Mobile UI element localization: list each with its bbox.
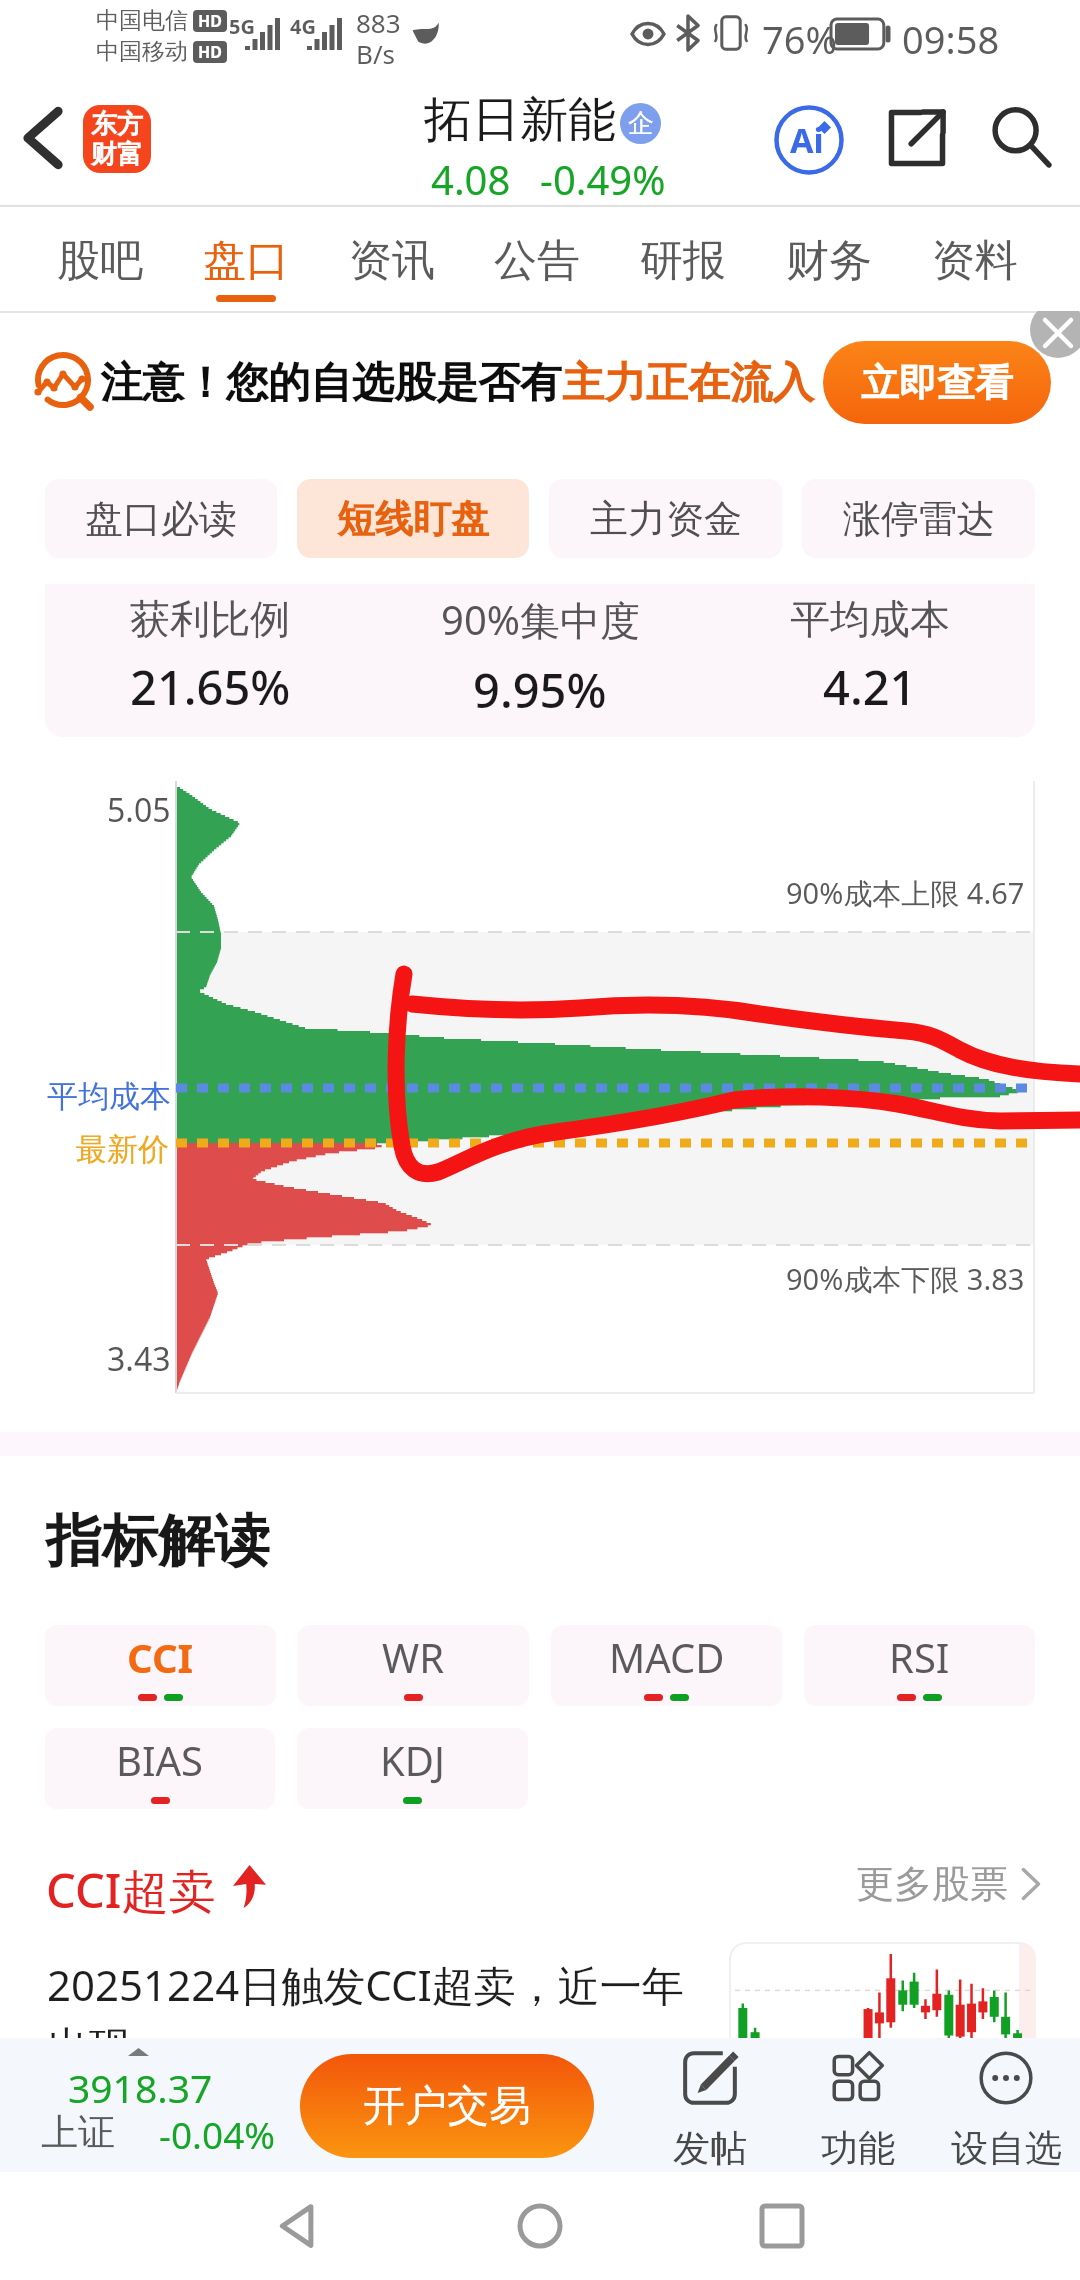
staticText: 中国移动 [96,37,188,66]
button[interactable]: Home [510,2196,570,2256]
button[interactable]: CCI [45,1625,276,1706]
staticText: 股吧 [57,234,143,288]
button[interactable]: 研报 [611,208,755,306]
staticText: MACD [609,1630,725,1684]
button[interactable]: AI assistant [774,105,844,175]
button[interactable]: 主力资金 [549,479,782,558]
staticText: 21.65% [130,655,291,719]
button[interactable]: Close banner [1030,311,1080,358]
button[interactable]: Back [268,2196,328,2256]
button[interactable]: 3918.37 [30,2060,280,2160]
staticText: 短线盯盘 [337,495,489,543]
staticText: 获利比例 [130,594,290,644]
staticText: 4G [290,13,316,40]
staticText: 拓日新能 [424,90,616,150]
button[interactable]: 股吧 [28,208,172,306]
staticText: 盘口必读 [85,495,237,543]
staticText: 5G [229,13,255,40]
staticText: BIAS [116,1733,204,1787]
button[interactable]: 更多股票 [856,1860,1042,1908]
staticText: HD [198,41,222,63]
staticText: 3918.37 [68,2061,213,2114]
staticText: B/s [356,36,396,71]
staticText: KDJ [380,1733,445,1787]
staticText: 盘口 [203,234,289,288]
staticText: 20251224日触发CCI超卖，近一年 [47,1956,684,2013]
staticText: 资料 [932,234,1018,288]
button[interactable]: 开户交易 [300,2054,594,2158]
staticText: 东方 财富 [91,108,143,171]
button[interactable]: KDJ [297,1728,528,1809]
staticText: 平均成本 [790,594,950,644]
button[interactable]: 功能 [783,2051,933,2172]
staticText: 研报 [640,234,726,288]
button[interactable]: 资讯 [320,208,464,306]
staticText: 90%成本上限 4.67 [786,873,1025,913]
button[interactable]: 发帖 [635,2051,785,2172]
button[interactable]: WR [298,1625,529,1706]
staticText: 指标解读 [46,1506,270,1577]
staticText: 中国电信 [96,6,188,35]
staticText: 90%成本下限 3.83 [786,1259,1025,1299]
staticText: -0.49% [540,152,666,206]
staticText: Ai [790,117,824,163]
staticText: 更多股票 [856,1860,1008,1908]
staticText: 企 [628,107,654,140]
staticText: 功能 [821,2125,895,2172]
staticText: 平均成本 [47,1077,171,1116]
staticText: 上证 [41,2109,115,2156]
button[interactable]: 设自选 [931,2051,1080,2172]
staticText: 注意！您的自选股是否有 [100,357,562,410]
button[interactable]: Back [10,98,76,178]
staticText: 涨停雷达 [843,495,995,543]
staticText: 4.08 [431,152,511,206]
staticText: CCI超卖 [46,1858,216,1922]
staticText: 财务 [786,234,872,288]
staticText: -0.04% [159,2109,276,2159]
staticText: CCI [127,1630,194,1684]
staticText: 立即查看 [861,359,1013,407]
button[interactable]: 立即查看 [823,341,1051,424]
staticText: 最新价 [76,1130,169,1169]
staticText: 90%集中度 [441,592,640,647]
button[interactable]: 财务 [757,208,901,306]
button[interactable]: 东方 财富 [83,105,151,173]
button[interactable]: Recent apps [752,2196,812,2256]
staticText: RSI [889,1630,950,1684]
button[interactable] [729,1942,1036,2052]
staticText: 3.43 [107,1337,171,1381]
button[interactable]: 短线盯盘 [297,479,529,558]
button[interactable]: MACD [551,1625,782,1706]
staticText: 主力正在流入 [562,357,814,410]
button[interactable]: Share [884,105,950,171]
button[interactable]: BIAS [45,1728,275,1809]
button[interactable]: 公告 [465,208,609,306]
staticText: 公告 [494,234,580,288]
staticText: 09:58 [902,13,1000,65]
button[interactable]: 资料 [903,208,1047,306]
staticText: 资讯 [349,234,435,288]
staticText: 883 [356,5,401,40]
button[interactable]: 涨停雷达 [802,479,1035,558]
staticText: 9.95% [473,658,607,722]
staticText: HD [198,10,222,32]
button[interactable]: Search [988,104,1056,172]
staticText: WR [382,1630,445,1684]
staticText: 出现 [47,2022,131,2075]
button[interactable]: 盘口必读 [45,479,277,558]
staticText: 主力资金 [590,495,742,543]
staticText: 5.05 [107,788,171,832]
button[interactable]: 盘口 [174,208,318,306]
staticText: 发帖 [673,2125,747,2172]
button[interactable]: RSI [804,1625,1035,1706]
staticText: 4.21 [823,655,917,719]
staticText: 76% [762,13,838,65]
staticText: 设自选 [951,2125,1062,2172]
staticText: 开户交易 [363,2080,531,2133]
